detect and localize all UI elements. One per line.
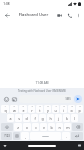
staticText: , [25,134,26,139]
staticText: 2 [13,105,15,108]
staticText: e [22,108,25,113]
button[interactable]: v [40,123,47,131]
staticText: y [47,108,49,113]
button[interactable]: f [31,114,38,122]
staticText: u [54,108,57,113]
button[interactable] [28,145,56,147]
button[interactable]: ?123 [1,132,12,140]
button[interactable]: g [39,114,46,122]
staticText: 3 [22,105,24,108]
staticText: SMS [65,97,71,101]
staticText: c [35,125,37,130]
button[interactable]: x [23,123,31,131]
button[interactable]: l [71,114,78,122]
button[interactable]: s [15,114,22,122]
button[interactable]: Space [30,132,61,140]
staticText: f [34,116,36,121]
staticText: ?123 [4,134,10,138]
button[interactable]: . [62,132,70,140]
staticText: x [26,125,28,130]
staticText: h [49,116,52,121]
button[interactable]: 7 [52,105,59,113]
staticText: j [58,116,59,121]
staticText: k [66,116,68,121]
button[interactable]: 1 [1,105,9,113]
button[interactable]: 4 [28,105,35,113]
button[interactable]: 0 [76,105,83,113]
button[interactable]: Key [1,123,13,131]
button[interactable]: More options [74,11,82,19]
button[interactable]: Call [64,10,74,20]
staticText: a [9,116,12,121]
staticText: 0 [79,105,81,108]
button[interactable]: j [55,114,62,122]
staticText: 5 [39,105,41,108]
staticText: r [31,108,33,113]
staticText: 9 [71,105,73,108]
button[interactable]: Send [74,95,82,103]
staticText: z [17,125,19,130]
button[interactable]: z [14,123,22,131]
staticText: p [78,108,81,113]
staticText: i [63,108,64,113]
staticText: t [39,108,41,113]
button[interactable]: GIF [10,95,18,103]
button[interactable]: SMS [19,95,73,103]
staticText: 11:08 AM [35,81,49,85]
button[interactable]: 3 [19,105,27,113]
staticText: q [4,108,7,113]
button[interactable]: , [21,132,29,140]
button[interactable]: Key [71,132,83,140]
button[interactable]: h [47,114,54,122]
button[interactable]: a [7,114,14,122]
staticText: b [50,125,53,130]
staticText: o [70,108,73,113]
button[interactable]: 8 [60,105,67,113]
staticText: n [58,125,61,130]
staticText: s [18,116,20,121]
button[interactable]: Hide keyboard [2,143,8,149]
staticText: m [66,125,70,130]
staticText: 6 [47,105,49,108]
button[interactable]: Key [13,132,20,140]
button[interactable]: 6 [44,105,51,113]
staticText: d [25,116,28,121]
staticText: w [13,108,16,113]
button[interactable]: 9 [68,105,75,113]
button[interactable]: Emoji [2,95,10,103]
button[interactable]: Keyboard switcher [77,143,82,148]
staticText: 7 [55,105,57,108]
button[interactable]: c [32,123,39,131]
staticText: 1 [4,105,6,108]
staticText: 8 [63,105,65,108]
button[interactable]: Back [2,10,12,20]
staticText: 4 [31,105,33,108]
button[interactable]: 5 [36,105,43,113]
button[interactable]: b [48,123,55,131]
staticText: g [41,116,44,121]
button[interactable]: k [63,114,70,122]
staticText: . [66,134,67,139]
staticText: v [43,125,45,130]
button[interactable]: 2 [10,105,18,113]
button[interactable]: n [56,123,63,131]
button[interactable]: d [23,114,30,122]
button[interactable]: Video call [54,10,64,20]
staticText: Texting with Flashcard User (SMS/MMS) [18,89,66,93]
button[interactable]: m [64,123,71,131]
staticText: Flashcard User [13,12,54,18]
button[interactable]: Key [72,123,83,131]
staticText: 1:08 [3,2,10,6]
staticText: l [74,116,75,121]
